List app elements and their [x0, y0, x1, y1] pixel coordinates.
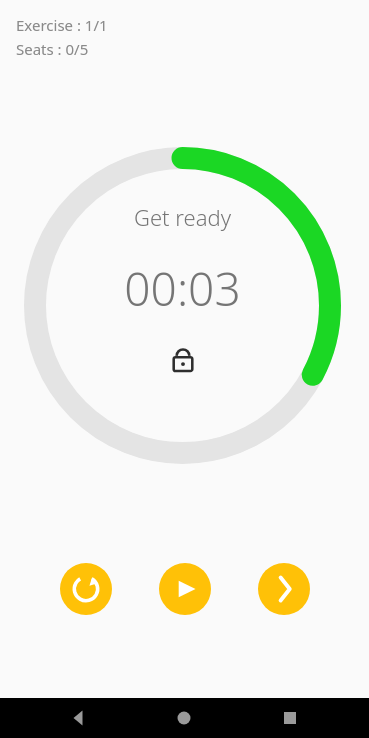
button[interactable]: Play	[159, 563, 211, 615]
staticText: Exercise : 1/1	[16, 15, 108, 35]
staticText: Seats : 0/5	[16, 39, 89, 59]
button[interactable]: Next	[258, 563, 310, 615]
staticText: 00:03	[124, 257, 241, 320]
button[interactable]: Locked	[168, 344, 198, 374]
staticText: Get ready	[134, 202, 231, 232]
button[interactable]: Restart	[60, 563, 112, 615]
